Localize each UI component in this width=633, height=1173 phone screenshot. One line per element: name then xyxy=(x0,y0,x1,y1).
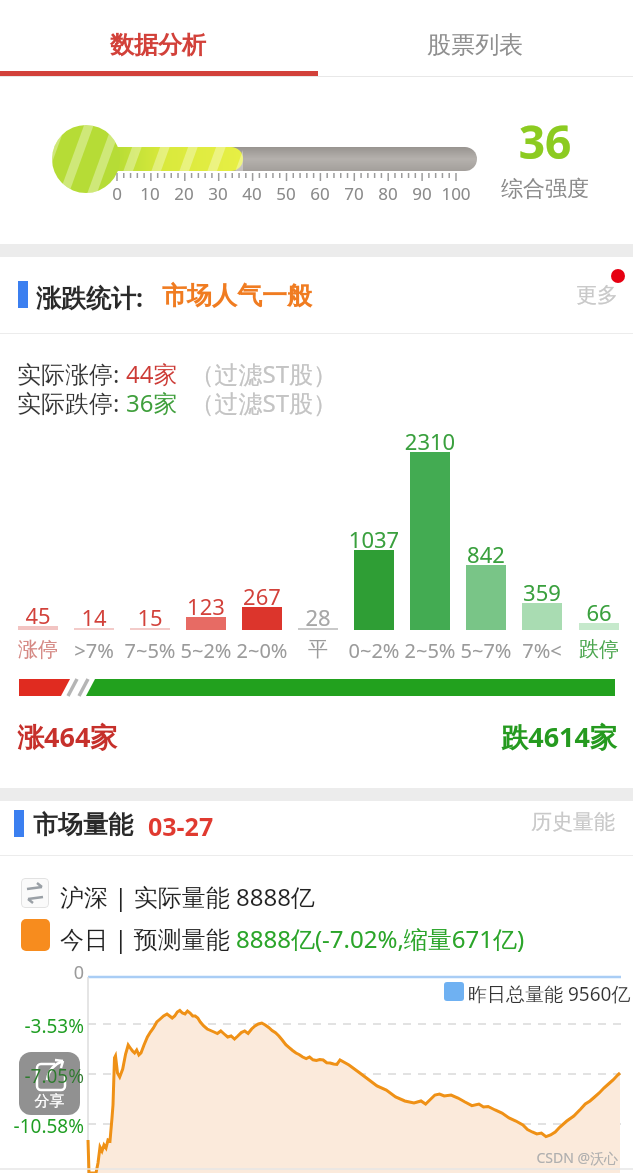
button[interactable]: 数据分析 xyxy=(0,14,316,76)
staticText: 涨跌统计: xyxy=(36,280,336,314)
staticText: -3.53% xyxy=(0,1013,84,1039)
staticText: 昨日总量能 9560亿 xyxy=(468,981,633,1007)
staticText: 分享 xyxy=(19,1092,80,1111)
staticText: （过滤ST股） xyxy=(178,386,337,419)
staticText: 数据分析 xyxy=(110,30,206,60)
staticText: 2~5% xyxy=(396,637,464,664)
staticText: 2~0% xyxy=(228,637,296,664)
staticText: 66 xyxy=(565,597,633,627)
staticText: 15 xyxy=(116,602,184,632)
staticText: 1037 xyxy=(340,524,408,554)
staticText: 市场人气一般 xyxy=(162,280,462,311)
staticText: 842 xyxy=(452,539,520,569)
staticText: 60 xyxy=(300,182,340,205)
staticText: 2310 xyxy=(396,426,464,456)
staticText: 40 xyxy=(232,182,272,205)
staticText: 涨停 xyxy=(4,637,72,662)
staticText: 历史量能 xyxy=(500,809,615,835)
staticText: >7% xyxy=(60,637,128,664)
staticText: 今日 | 预测量能 xyxy=(60,922,236,955)
staticText: 03-27 xyxy=(148,809,448,843)
staticText: 90 xyxy=(402,182,442,205)
staticText: 50 xyxy=(266,182,306,205)
staticText: 7~5% xyxy=(116,637,184,664)
staticText: 30 xyxy=(198,182,238,205)
staticText: 实际涨停: xyxy=(17,357,126,390)
staticText: 0 xyxy=(50,960,84,985)
staticText: 5~7% xyxy=(452,637,520,664)
staticText: 28 xyxy=(284,602,352,632)
staticText: 股票列表 xyxy=(427,30,523,60)
staticText: 7%< xyxy=(508,637,576,664)
button[interactable]: 历史量能 xyxy=(500,800,630,845)
button[interactable]: 股票列表 xyxy=(317,14,633,76)
staticText: 36家 xyxy=(126,386,178,419)
staticText: 5~2% xyxy=(172,637,240,664)
staticText: 平 xyxy=(284,637,352,662)
staticText: 70 xyxy=(334,182,374,205)
staticText: -7.05% xyxy=(0,1063,84,1089)
staticText: 44家 xyxy=(126,357,178,390)
staticText: 跌停 xyxy=(565,637,633,662)
staticText: 20 xyxy=(164,182,204,205)
staticText: 实际跌停: xyxy=(17,386,126,419)
staticText: 涨464家 xyxy=(17,718,217,755)
staticText: 123 xyxy=(172,591,240,621)
button[interactable]: 更多 xyxy=(540,270,630,315)
staticText: 8888亿(-7.02%,缩量671亿) xyxy=(236,922,525,955)
staticText: （过滤ST股） xyxy=(178,357,337,390)
staticText: -10.58% xyxy=(0,1113,84,1139)
staticText: 沪深 | 实际量能 8888亿 xyxy=(60,880,315,913)
staticText: 跌4614家 xyxy=(420,718,617,755)
staticText: 市场量能 xyxy=(33,809,333,840)
staticText: 10 xyxy=(130,182,170,205)
staticText: 267 xyxy=(228,581,296,611)
staticText: 0 xyxy=(97,182,137,205)
staticText: 更多 xyxy=(540,282,618,308)
staticText: 100 xyxy=(436,182,476,205)
staticText: 14 xyxy=(60,602,128,632)
staticText: 0~2% xyxy=(340,637,408,664)
staticText: CSDN @沃心 xyxy=(508,1148,618,1167)
staticText: 80 xyxy=(368,182,408,205)
staticText: 36 xyxy=(480,110,610,173)
staticText: 综合强度 xyxy=(480,175,610,203)
staticText: 359 xyxy=(508,577,576,607)
staticText: 45 xyxy=(4,600,72,630)
button[interactable]: 分享 xyxy=(19,1052,80,1115)
